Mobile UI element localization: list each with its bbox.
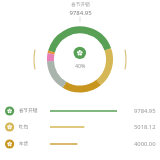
staticText: 40% [75, 62, 86, 69]
staticText: 春节开销 [19, 108, 38, 114]
button[interactable]: 红包 [0, 119, 160, 135]
button[interactable]: 春节开销 [0, 103, 160, 119]
button[interactable]: 年货 [0, 136, 160, 152]
staticText: 春节开销 [71, 2, 90, 8]
staticText: 9784.95 [134, 107, 156, 115]
staticText: 5018.12 [134, 123, 156, 131]
staticText: 年货 [19, 141, 29, 147]
staticText: 9784.95 [69, 9, 92, 17]
staticText: 红包 [19, 124, 29, 130]
staticText: 4000.00 [134, 140, 156, 148]
